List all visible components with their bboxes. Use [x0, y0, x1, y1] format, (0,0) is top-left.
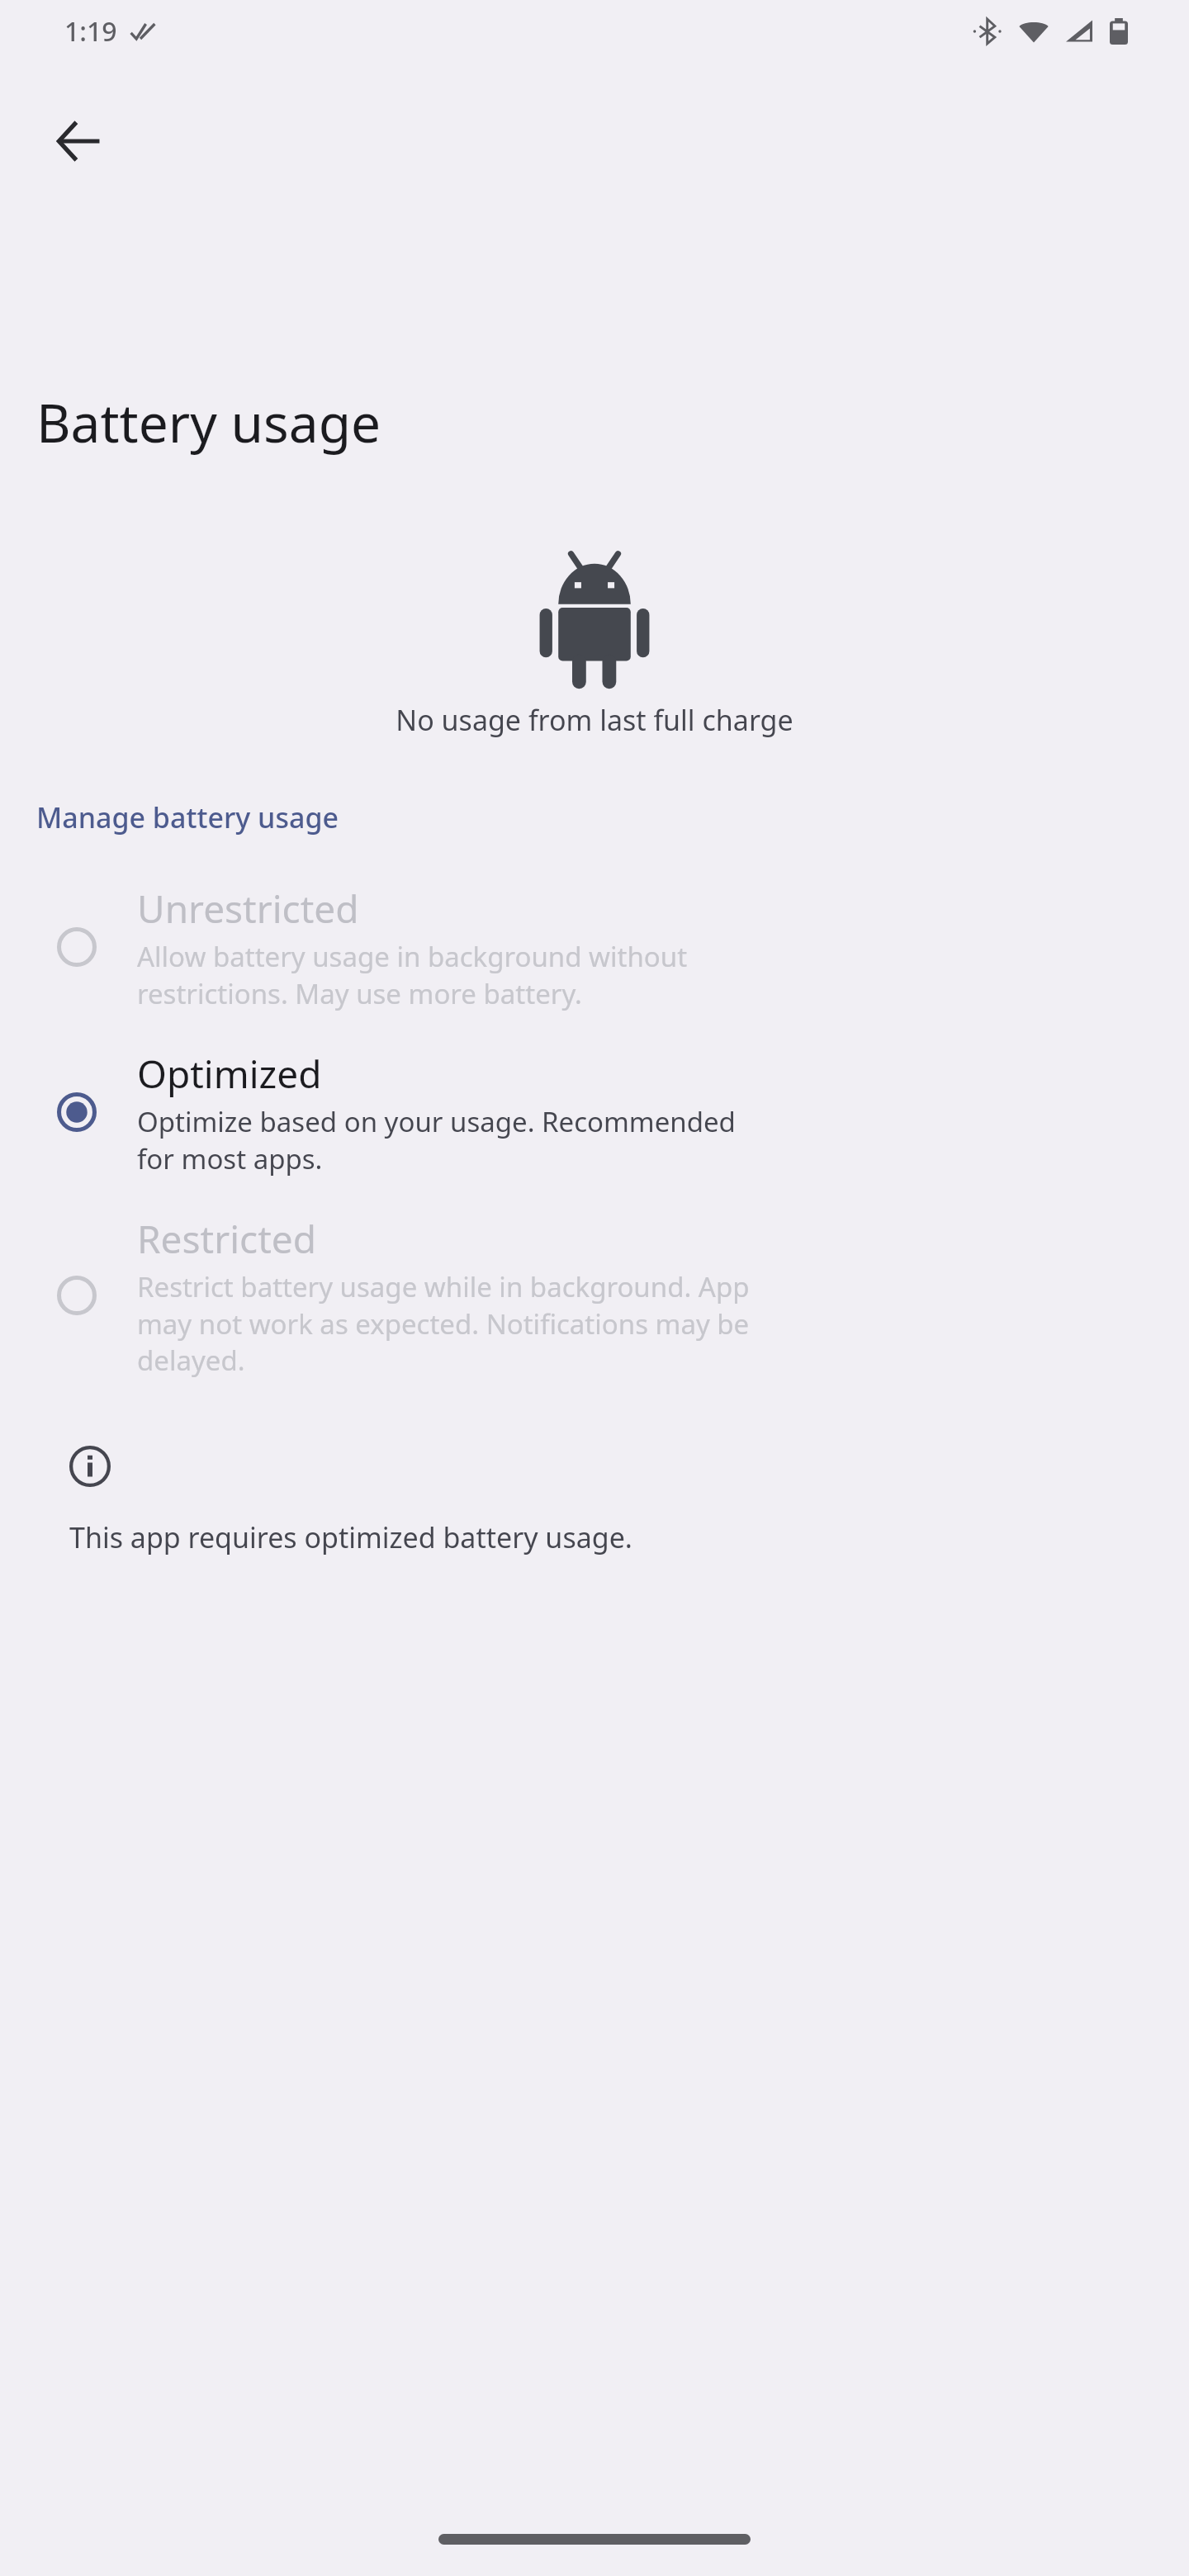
staticText: Optimize based on your usage. Recommende…	[137, 1103, 736, 1177]
staticText: Unrestricted	[137, 883, 359, 935]
staticText: Allow battery usage in background withou…	[137, 938, 688, 1011]
staticText: Manage battery usage	[36, 798, 339, 836]
staticText: Battery usage	[36, 386, 381, 458]
staticText: No usage from last full charge	[0, 701, 1189, 739]
staticText: This app requires optimized battery usag…	[69, 1518, 632, 1556]
staticText: 1:19	[64, 13, 117, 50]
button[interactable]: Unrestricted	[0, 864, 1189, 1030]
staticText: Optimized	[137, 1048, 322, 1100]
staticText: Restricted	[137, 1213, 316, 1265]
button[interactable]: Optimized	[0, 1030, 1189, 1195]
button[interactable]: Restricted	[0, 1195, 1189, 1396]
button[interactable]: Back	[41, 104, 116, 178]
staticText: Restrict battery usage while in backgrou…	[137, 1268, 750, 1378]
